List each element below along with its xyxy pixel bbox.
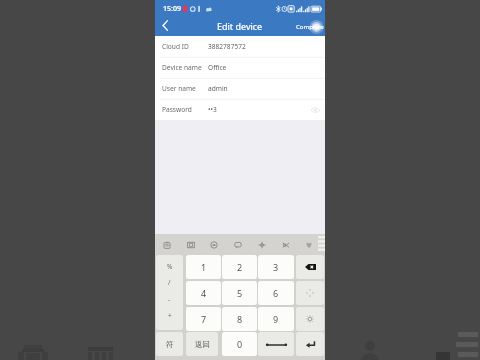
- button[interactable]: 返回: [186, 332, 218, 356]
- staticText: 符: [166, 340, 174, 349]
- button[interactable]: 5: [222, 281, 257, 305]
- staticText: -: [168, 295, 171, 304]
- button[interactable]: 符: [156, 332, 183, 356]
- button[interactable]: 9: [258, 307, 294, 331]
- staticText: 15:09: [163, 4, 181, 14]
- button[interactable]: Settings: [296, 307, 324, 331]
- button[interactable]: Cursor: [296, 281, 324, 305]
- staticText: 3: [273, 261, 279, 273]
- staticText: 4: [201, 287, 207, 299]
- button[interactable]: Favourites: [301, 234, 317, 255]
- staticText: %: [167, 262, 173, 271]
- button[interactable]: Back: [155, 15, 181, 36]
- button[interactable]: Backspace: [296, 255, 324, 279]
- staticText: 5: [237, 287, 243, 299]
- staticText: 9: [273, 313, 279, 325]
- button[interactable]: 4: [186, 281, 221, 305]
- button[interactable]: 1: [186, 255, 221, 279]
- button[interactable]: -: [156, 291, 183, 307]
- button[interactable]: Password: [155, 99, 325, 120]
- staticText: +: [168, 311, 172, 320]
- button[interactable]: 7: [186, 307, 221, 331]
- button[interactable]: Mute: [276, 234, 296, 255]
- staticText: Edit device: [217, 20, 263, 32]
- staticText: 3882787572: [208, 42, 246, 51]
- staticText: Device name: [162, 63, 202, 72]
- other: Settings: [306, 315, 314, 323]
- staticText: 8: [237, 313, 243, 325]
- button[interactable]: Clipboard: [157, 234, 177, 255]
- staticText: Office: [208, 63, 227, 72]
- button[interactable]: Cloud ID: [155, 36, 325, 57]
- button[interactable]: User name: [155, 78, 325, 99]
- staticText: ••3: [208, 105, 217, 114]
- staticText: 1: [201, 261, 207, 273]
- button[interactable]: Emoji: [204, 234, 224, 255]
- other: Space: [266, 342, 287, 346]
- staticText: Complete: [296, 22, 324, 30]
- button[interactable]: Space: [258, 332, 294, 356]
- button[interactable]: 8: [222, 307, 257, 331]
- button[interactable]: Keyboard layout: [181, 234, 201, 255]
- button[interactable]: 2: [222, 255, 257, 279]
- button[interactable]: Complete: [290, 15, 325, 36]
- button[interactable]: Device name: [155, 57, 325, 78]
- button[interactable]: Show password: [305, 99, 325, 120]
- other: Backspace: [305, 264, 316, 270]
- staticText: 2: [237, 261, 243, 273]
- button[interactable]: /: [156, 274, 183, 290]
- button[interactable]: Enter: [296, 332, 324, 356]
- staticText: /: [168, 278, 171, 287]
- button[interactable]: Theme: [252, 234, 272, 255]
- staticText: 7: [201, 313, 207, 325]
- staticText: 6: [273, 287, 279, 299]
- other: Enter: [305, 339, 316, 350]
- button[interactable]: +: [156, 307, 183, 323]
- button[interactable]: %: [156, 258, 183, 274]
- button[interactable]: 6: [258, 281, 294, 305]
- staticText: admin: [208, 84, 228, 93]
- button[interactable]: 3: [258, 255, 294, 279]
- staticText: Cloud ID: [162, 42, 189, 51]
- staticText: 0: [237, 338, 243, 350]
- staticText: 返回: [195, 340, 210, 349]
- button[interactable]: Voice input: [228, 234, 248, 255]
- other: Cursor: [306, 289, 314, 297]
- button[interactable]: 0: [222, 332, 257, 356]
- staticText: User name: [162, 84, 196, 93]
- staticText: Password: [162, 105, 192, 114]
